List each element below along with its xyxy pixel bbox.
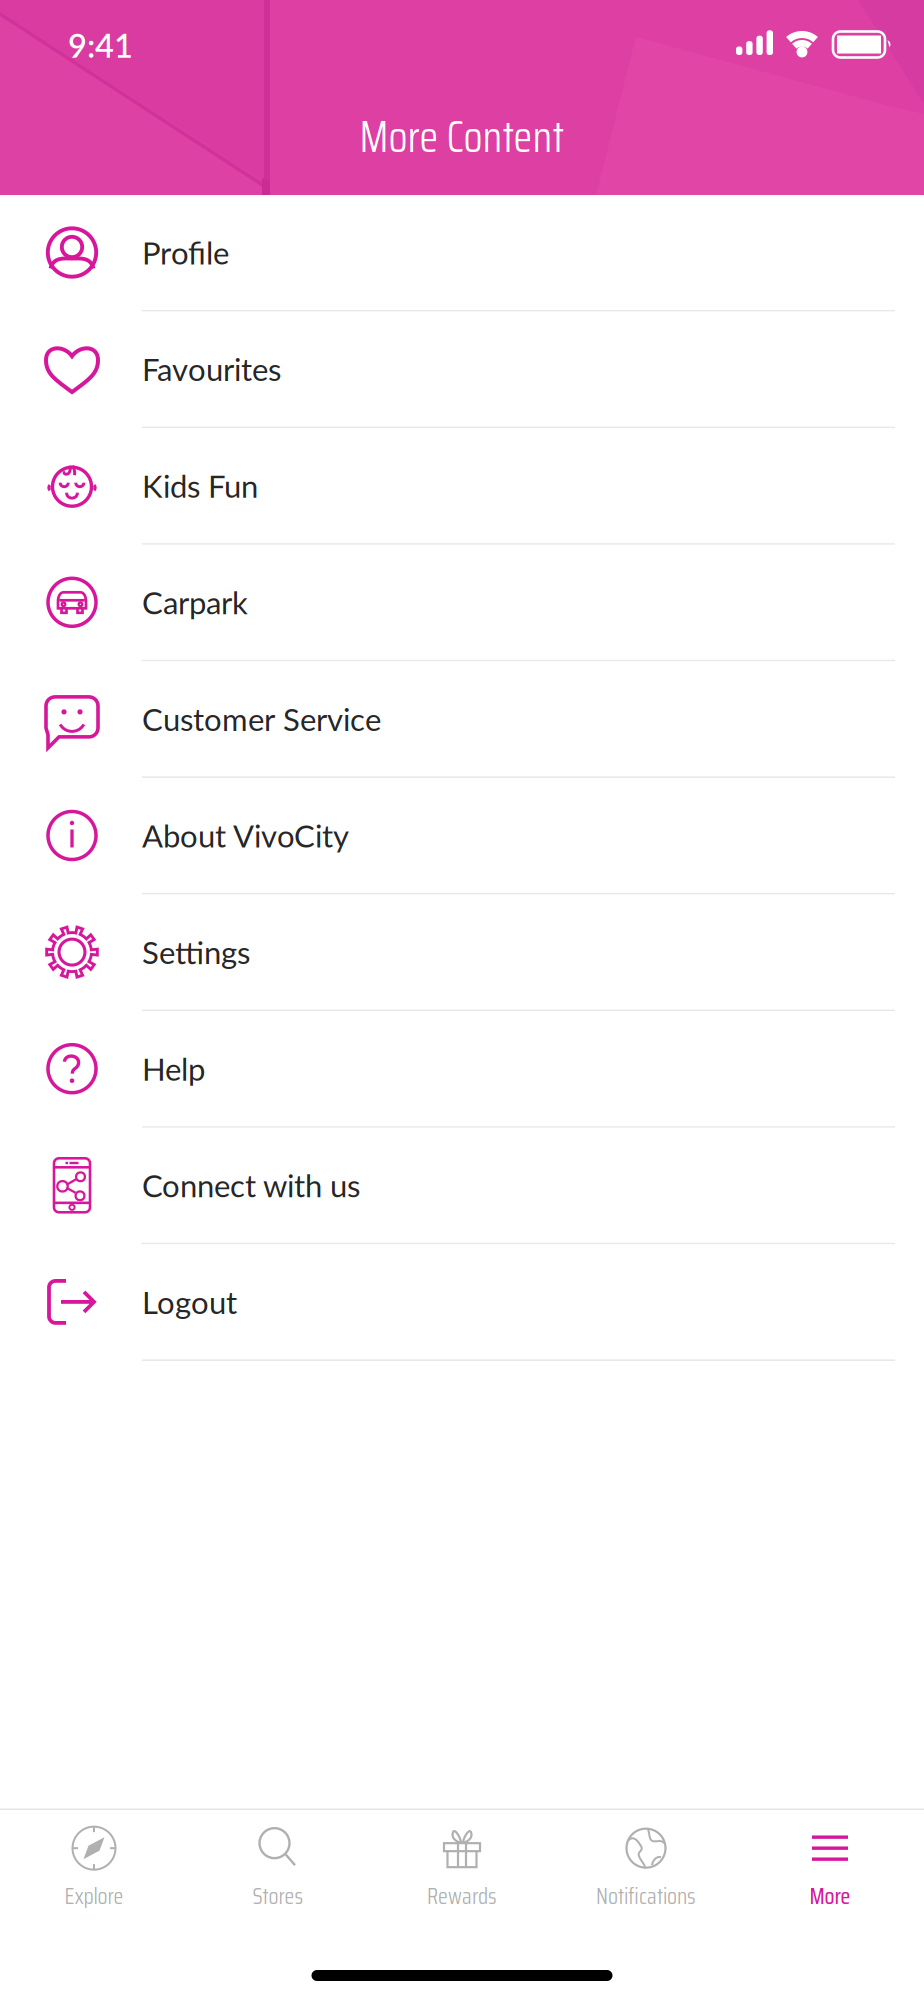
button[interactable]: Connect with us xyxy=(0,1128,924,1244)
staticText: 9:41 xyxy=(68,25,133,65)
staticText: Connect with us xyxy=(142,1167,360,1204)
staticText: Notifications xyxy=(596,1878,696,1914)
button[interactable]: Settings xyxy=(0,895,924,1011)
staticText: Kids Fun xyxy=(142,467,258,504)
button[interactable]: Customer Service xyxy=(0,661,924,778)
staticText: Help xyxy=(142,1050,205,1087)
staticText: Settings xyxy=(142,933,250,971)
staticText: Rewards xyxy=(427,1878,497,1914)
staticText: Stores xyxy=(252,1878,303,1914)
button[interactable]: Profile xyxy=(0,195,924,312)
button[interactable]: Carpark xyxy=(0,545,924,661)
button[interactable]: Notifications xyxy=(554,1807,738,1923)
staticText: Carpark xyxy=(142,584,248,621)
button[interactable]: Explore xyxy=(2,1807,186,1923)
button[interactable]: More xyxy=(738,1807,922,1923)
button[interactable]: Rewards xyxy=(370,1807,554,1923)
button[interactable]: Favourites xyxy=(0,312,924,428)
staticText: About VivoCity xyxy=(142,817,349,854)
button[interactable]: Help xyxy=(0,1011,924,1128)
button[interactable]: Kids Fun xyxy=(0,428,924,545)
button[interactable]: About VivoCity xyxy=(0,778,924,895)
staticText: Explore xyxy=(64,1878,123,1914)
staticText: More Content xyxy=(359,103,564,171)
staticText: Logout xyxy=(142,1283,237,1321)
button[interactable]: Stores xyxy=(186,1807,370,1923)
staticText: Customer Service xyxy=(142,700,381,738)
button[interactable]: Logout xyxy=(0,1244,924,1361)
staticText: More xyxy=(809,1878,850,1914)
staticText: Profile xyxy=(142,234,229,271)
staticText: Favourites xyxy=(142,350,281,388)
